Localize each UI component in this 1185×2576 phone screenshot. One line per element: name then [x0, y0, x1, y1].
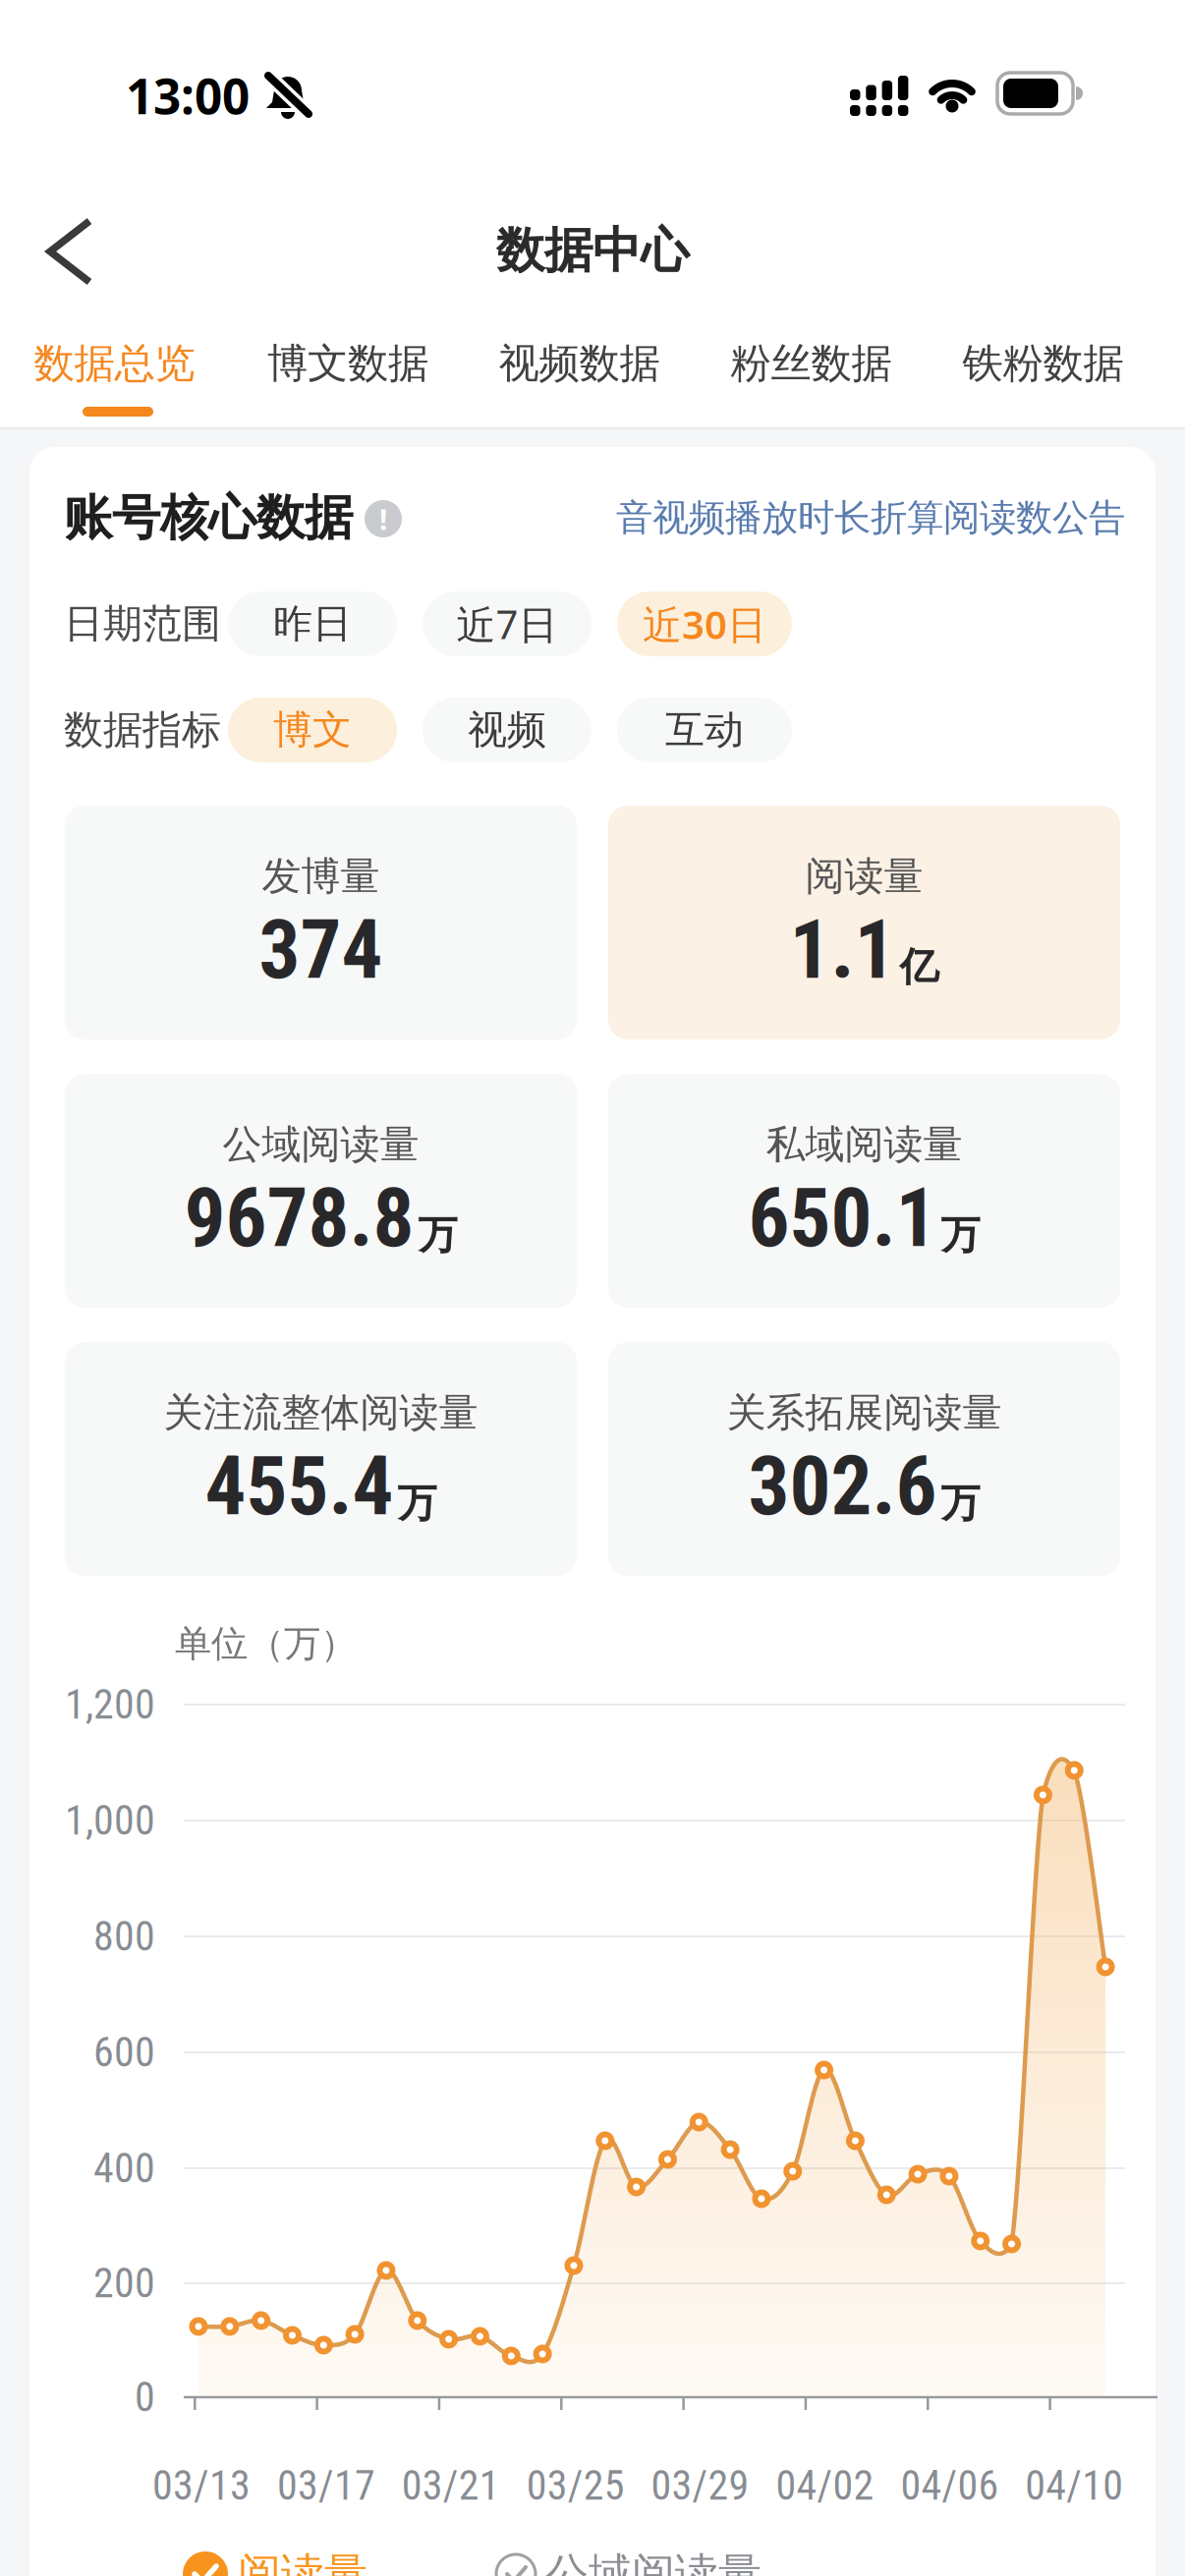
staticText: 近7日 — [456, 598, 558, 650]
staticText: 账号核心数据 — [64, 488, 353, 548]
staticText: 302.6 — [748, 1439, 937, 1534]
staticText: 万 — [941, 1211, 980, 1259]
button[interactable]: 近7日 — [423, 591, 592, 656]
staticText: 9678.8 — [184, 1170, 414, 1266]
button[interactable]: 近30日 — [617, 591, 792, 656]
staticText: 视频数据 — [499, 339, 660, 388]
button[interactable]: 阅读量 — [608, 806, 1120, 1039]
staticText: 03/21 — [402, 2461, 500, 2510]
staticText: 互动 — [665, 706, 744, 754]
staticText: 发博量 — [262, 852, 380, 900]
staticText: 400 — [93, 2144, 155, 2192]
button[interactable]: 视频 — [423, 698, 592, 762]
staticText: 455.4 — [205, 1439, 394, 1534]
button[interactable]: 私域阅读量 — [608, 1074, 1120, 1308]
button[interactable]: 公域阅读量 — [65, 1074, 577, 1308]
staticText: 日期范围 — [64, 600, 221, 648]
staticText: 近30日 — [643, 598, 766, 650]
staticText: 关注流整体阅读量 — [164, 1389, 478, 1437]
button[interactable]: 博文数据 — [245, 312, 451, 415]
button[interactable]: 博文 — [228, 698, 397, 762]
staticText: 600 — [93, 2028, 155, 2077]
button[interactable]: 关注流整体阅读量 — [65, 1342, 577, 1576]
staticText: 视频 — [468, 706, 546, 754]
staticText: 04/06 — [900, 2461, 999, 2510]
staticText: 关系拓展阅读量 — [727, 1389, 1002, 1437]
staticText: 万 — [418, 1211, 457, 1259]
button[interactable]: 粉丝数据 — [708, 312, 914, 415]
button[interactable]: 铁粉数据 — [940, 312, 1146, 415]
staticText: 0 — [135, 2373, 155, 2421]
staticText: 粉丝数据 — [731, 339, 892, 388]
staticText: 亿 — [900, 943, 939, 991]
button[interactable]: 发博量 — [65, 806, 577, 1039]
staticText: 私域阅读量 — [766, 1120, 962, 1169]
staticText: 13:00 — [126, 63, 250, 127]
staticText: 03/25 — [526, 2461, 625, 2510]
staticText: 374 — [259, 902, 383, 998]
staticText: 1,000 — [65, 1796, 155, 1845]
staticText: 铁粉数据 — [962, 339, 1124, 388]
staticText: 博文 — [273, 706, 352, 754]
button[interactable]: 返回 — [23, 204, 117, 299]
staticText: 1,200 — [65, 1680, 155, 1729]
staticText: 03/13 — [152, 2461, 251, 2510]
staticText: 800 — [93, 1912, 155, 1961]
staticText: 音视频播放时长折算阅读数公告 — [616, 495, 1125, 540]
staticText: 万 — [941, 1479, 980, 1527]
staticText: 阅读量 — [238, 2548, 367, 2576]
button[interactable]: 阅读量 — [183, 2548, 367, 2576]
staticText: 万 — [397, 1479, 437, 1527]
staticText: 单位（万） — [175, 1621, 357, 1666]
staticText: 阅读量 — [805, 852, 923, 900]
staticText: 博文数据 — [267, 339, 428, 388]
staticText: 数据总览 — [34, 339, 195, 388]
button[interactable]: 数据总览 — [11, 312, 218, 415]
staticText: 650.1 — [748, 1170, 937, 1266]
staticText: ! — [379, 500, 387, 538]
staticText: 数据中心 — [496, 221, 689, 280]
staticText: 公域阅读量 — [545, 2548, 762, 2576]
button[interactable]: 公域阅读量 — [496, 2548, 762, 2576]
staticText: 200 — [93, 2259, 155, 2307]
staticText: 数据指标 — [64, 706, 221, 754]
button[interactable]: 账号核心数据说明 — [365, 500, 402, 537]
staticText: 04/02 — [776, 2461, 874, 2510]
staticText: 03/29 — [651, 2461, 749, 2510]
button[interactable]: 关系拓展阅读量 — [608, 1342, 1120, 1576]
staticText: 公域阅读量 — [223, 1120, 419, 1169]
button[interactable]: 互动 — [617, 698, 792, 762]
staticText: 昨日 — [273, 600, 352, 648]
button[interactable]: 昨日 — [228, 591, 397, 656]
button[interactable]: 视频数据 — [476, 312, 682, 415]
staticText: 03/17 — [277, 2461, 375, 2510]
button[interactable]: 音视频播放时长折算阅读数公告 — [616, 495, 1125, 540]
staticText: 1.1 — [790, 902, 896, 998]
staticText: 04/10 — [1025, 2461, 1123, 2510]
